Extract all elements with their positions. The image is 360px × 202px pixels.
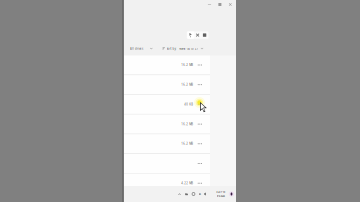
button[interactable]: Network (190, 187, 197, 201)
button[interactable]: Run (187, 31, 194, 39)
button[interactable]: 3:20 PM (216, 187, 225, 201)
staticText: Name (A to Z) (179, 47, 198, 50)
button[interactable]: 16.2 MB (124, 115, 210, 134)
staticText: 9/5/2024 (216, 194, 224, 198)
button[interactable]: 16.2 MB (124, 55, 210, 75)
button[interactable]: Notifications (228, 187, 235, 201)
staticText: 16.2 MB (181, 63, 193, 67)
staticText: 16.2 MB (181, 83, 193, 86)
staticText: 3:20 PM (216, 190, 225, 194)
button[interactable]: Sort by: (163, 45, 203, 53)
button[interactable]: Cancel (194, 31, 201, 39)
button[interactable]: 4.22 MB (124, 174, 210, 193)
staticText: Sort by: (166, 47, 176, 50)
button[interactable]: Show hidden icons (176, 187, 183, 201)
staticText: 4.22 MB (181, 181, 193, 185)
button[interactable]: Minimize (204, 0, 215, 9)
button[interactable]: All drives (129, 45, 154, 53)
staticText: 44 (198, 192, 200, 196)
staticText: 16.2 MB (181, 142, 193, 146)
staticText: 40 KB (184, 103, 193, 106)
staticText: 16.2 MB (181, 122, 193, 126)
button[interactable]: Maximize (215, 0, 225, 9)
button[interactable]: Close (225, 0, 235, 9)
button[interactable]: 16.2 MB (124, 75, 210, 95)
button[interactable]: Volume (202, 187, 209, 201)
button[interactable]: Stop (201, 31, 208, 39)
button[interactable]: Battery (197, 187, 202, 201)
button[interactable]: 40 KB (124, 95, 210, 115)
button[interactable]: OneDrive (183, 187, 190, 201)
button[interactable] (124, 154, 210, 174)
button[interactable]: 16.2 MB (124, 134, 210, 154)
staticText: All drives (130, 47, 143, 50)
